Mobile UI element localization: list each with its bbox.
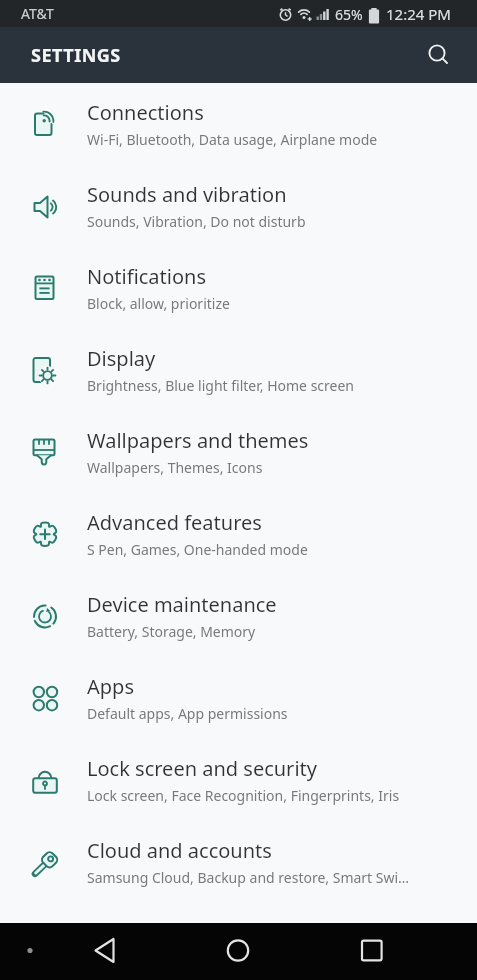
button[interactable]: Device maintenance bbox=[0, 575, 477, 657]
button[interactable]: Notifications bbox=[0, 247, 477, 329]
staticText: Block, allow, prioritize bbox=[87, 294, 230, 313]
staticText: Advanced features bbox=[87, 509, 262, 536]
button[interactable]: Cloud and accounts bbox=[0, 821, 477, 903]
button[interactable]: Lock screen and security bbox=[0, 739, 477, 821]
staticText: S Pen, Games, One-handed mode bbox=[87, 540, 308, 559]
staticText: Wi-Fi, Bluetooth, Data usage, Airplane m… bbox=[87, 130, 378, 149]
staticText: 12:24 PM bbox=[386, 4, 451, 24]
staticText: Cloud and accounts bbox=[87, 837, 272, 864]
staticText: AT&T bbox=[21, 4, 54, 23]
staticText: 65% bbox=[335, 5, 363, 24]
button[interactable]: Connections bbox=[0, 83, 477, 165]
staticText: Sounds and vibration bbox=[87, 181, 287, 208]
staticText: Connections bbox=[87, 99, 204, 126]
button[interactable] bbox=[0, 923, 159, 980]
staticText: Lock screen and security bbox=[87, 755, 317, 782]
staticText: Notifications bbox=[87, 263, 206, 290]
staticText: Device maintenance bbox=[87, 591, 277, 618]
staticText: Brightness, Blue light filter, Home scre… bbox=[87, 376, 355, 395]
button[interactable] bbox=[318, 923, 477, 980]
button[interactable]: Apps bbox=[0, 657, 477, 739]
button[interactable]: Sounds and vibration bbox=[0, 165, 477, 247]
button[interactable] bbox=[423, 41, 451, 69]
staticText: Samsung Cloud, Backup and restore, Smart… bbox=[87, 868, 410, 887]
staticText: Sounds, Vibration, Do not disturb bbox=[87, 212, 306, 231]
staticText: Apps bbox=[87, 673, 134, 700]
button[interactable]: Display bbox=[0, 329, 477, 411]
button[interactable] bbox=[159, 923, 318, 980]
staticText: SETTINGS bbox=[31, 43, 121, 68]
button[interactable]: Advanced features bbox=[0, 493, 477, 575]
staticText: Wallpapers, Themes, Icons bbox=[87, 458, 263, 477]
staticText: Display bbox=[87, 345, 156, 372]
staticText: Lock screen, Face Recognition, Fingerpri… bbox=[87, 786, 400, 805]
button[interactable]: Wallpapers and themes bbox=[0, 411, 477, 493]
staticText: Battery, Storage, Memory bbox=[87, 622, 256, 641]
staticText: Wallpapers and themes bbox=[87, 427, 309, 454]
staticText: Default apps, App permissions bbox=[87, 704, 288, 723]
